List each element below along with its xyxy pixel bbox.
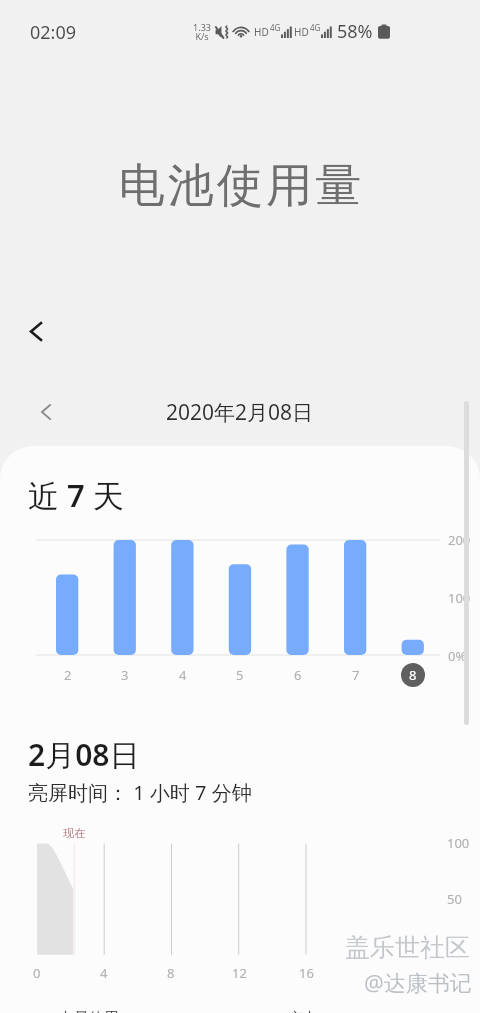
staticText: 电量使用 [59, 1009, 119, 1013]
staticText: @达康书记 [364, 967, 472, 997]
staticText: 6 [294, 666, 302, 684]
staticText: 7 [352, 666, 360, 684]
staticText: 12 [232, 964, 247, 982]
staticText: 2 [64, 666, 72, 684]
staticText: HD [254, 25, 269, 39]
button[interactable]: Previous day [24, 390, 68, 434]
button[interactable]: 8 [401, 663, 425, 687]
staticText: 0 [33, 964, 41, 982]
staticText: HD [294, 25, 309, 39]
staticText: 0% [448, 647, 467, 665]
staticText: 现在 [63, 826, 85, 840]
staticText: 8 [167, 964, 175, 982]
staticText: 4G [310, 22, 321, 33]
staticText: 100 [447, 834, 470, 852]
staticText: 1.33 K/s [193, 21, 211, 43]
staticText: 4G [270, 22, 281, 33]
staticText: 4 [179, 666, 187, 684]
staticText: 充电 [288, 1009, 318, 1013]
staticText: 2020年2月08日 [166, 398, 314, 427]
staticText: 200 [448, 531, 471, 549]
staticText: 电池使用量 [117, 157, 363, 215]
staticText: 16 [299, 964, 314, 982]
staticText: 4 [100, 964, 108, 982]
staticText: 盖乐世社区 [345, 932, 470, 963]
staticText: 02:09 [30, 20, 77, 45]
staticText: 100 [448, 589, 471, 607]
staticText: 58% [337, 19, 373, 44]
staticText: 2月08日 [28, 734, 140, 775]
staticText: 5 [236, 666, 244, 684]
button[interactable]: Back [8, 303, 64, 359]
staticText: 8 [409, 666, 417, 684]
staticText: 3 [121, 666, 129, 684]
staticText: 近 7 天 [28, 474, 124, 516]
staticText: 亮屏时间： 1 小时 7 分钟 [28, 779, 252, 806]
staticText: 50 [447, 890, 462, 908]
